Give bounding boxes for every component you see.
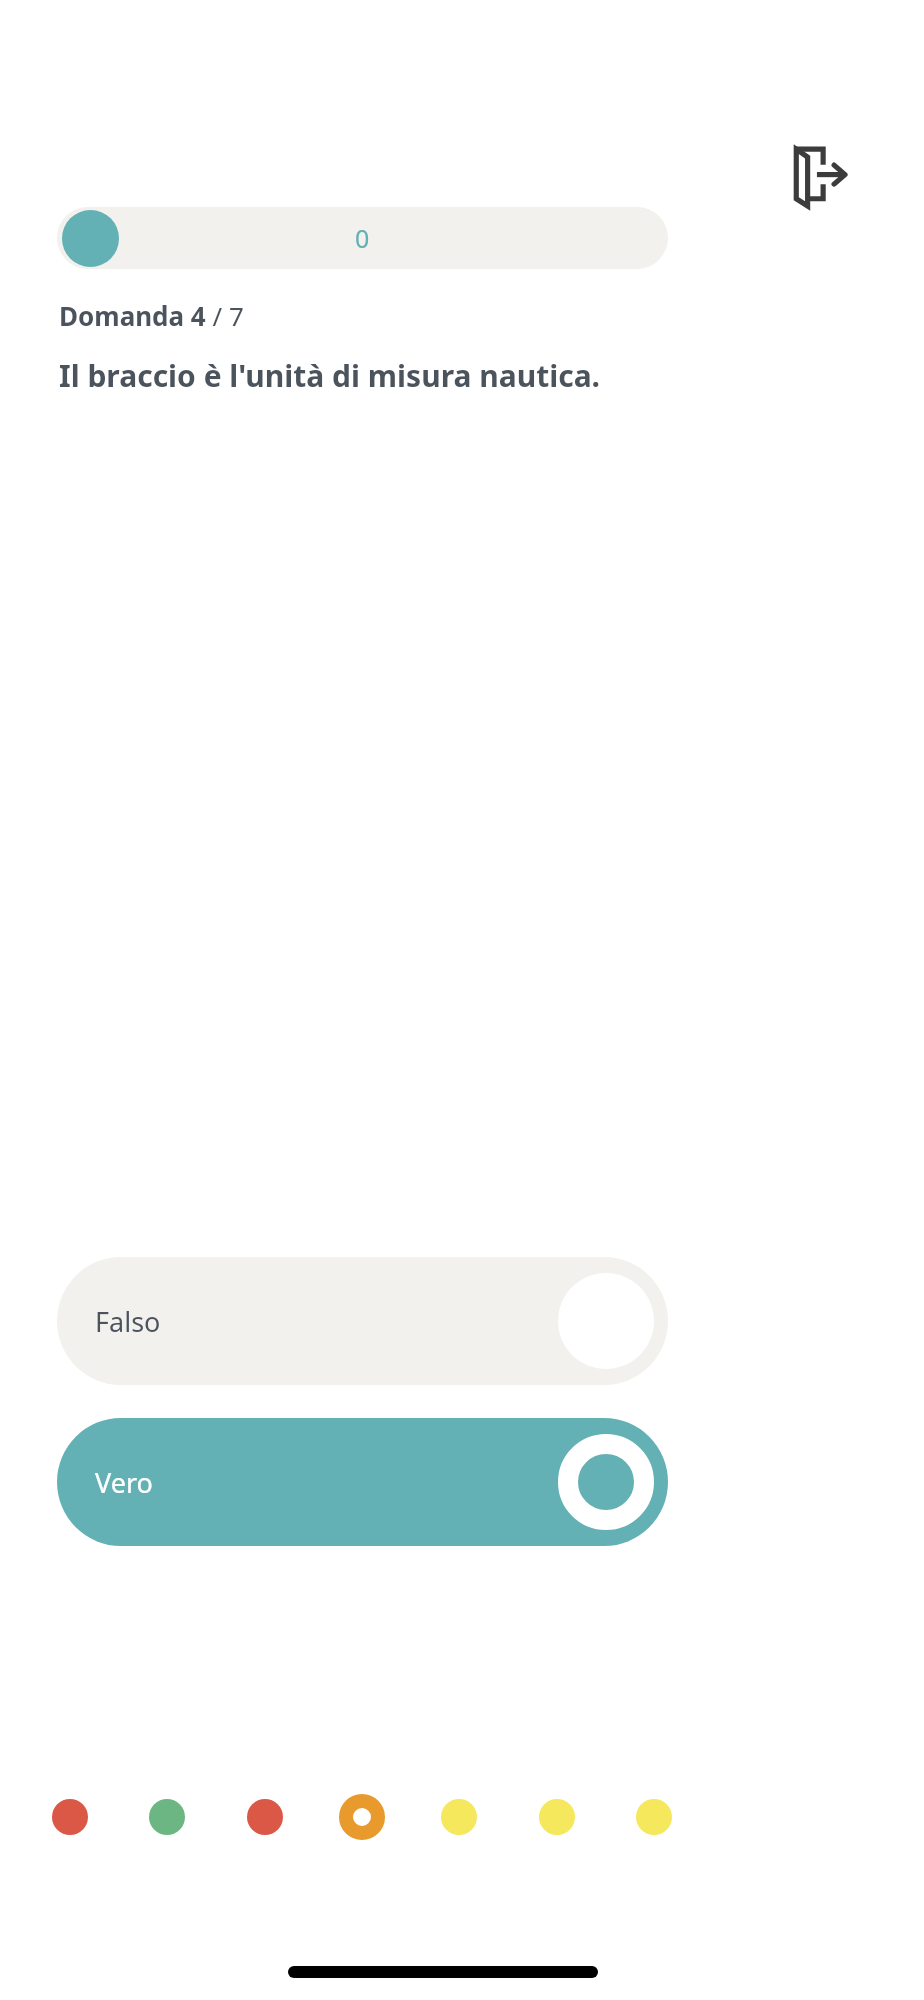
button[interactable]: Esci bbox=[762, 118, 876, 232]
staticText: Vero bbox=[95, 1464, 153, 1501]
staticText: Domanda 4 / 7 bbox=[59, 298, 244, 333]
staticText: Il braccio è l'unità di misura nautica. bbox=[59, 355, 601, 396]
button[interactable]: Falso bbox=[57, 1257, 668, 1385]
staticText: 0 bbox=[355, 221, 370, 255]
button[interactable]: Vero bbox=[57, 1418, 668, 1546]
staticText: Falso bbox=[95, 1303, 161, 1340]
button[interactable]: 0 bbox=[57, 207, 668, 269]
